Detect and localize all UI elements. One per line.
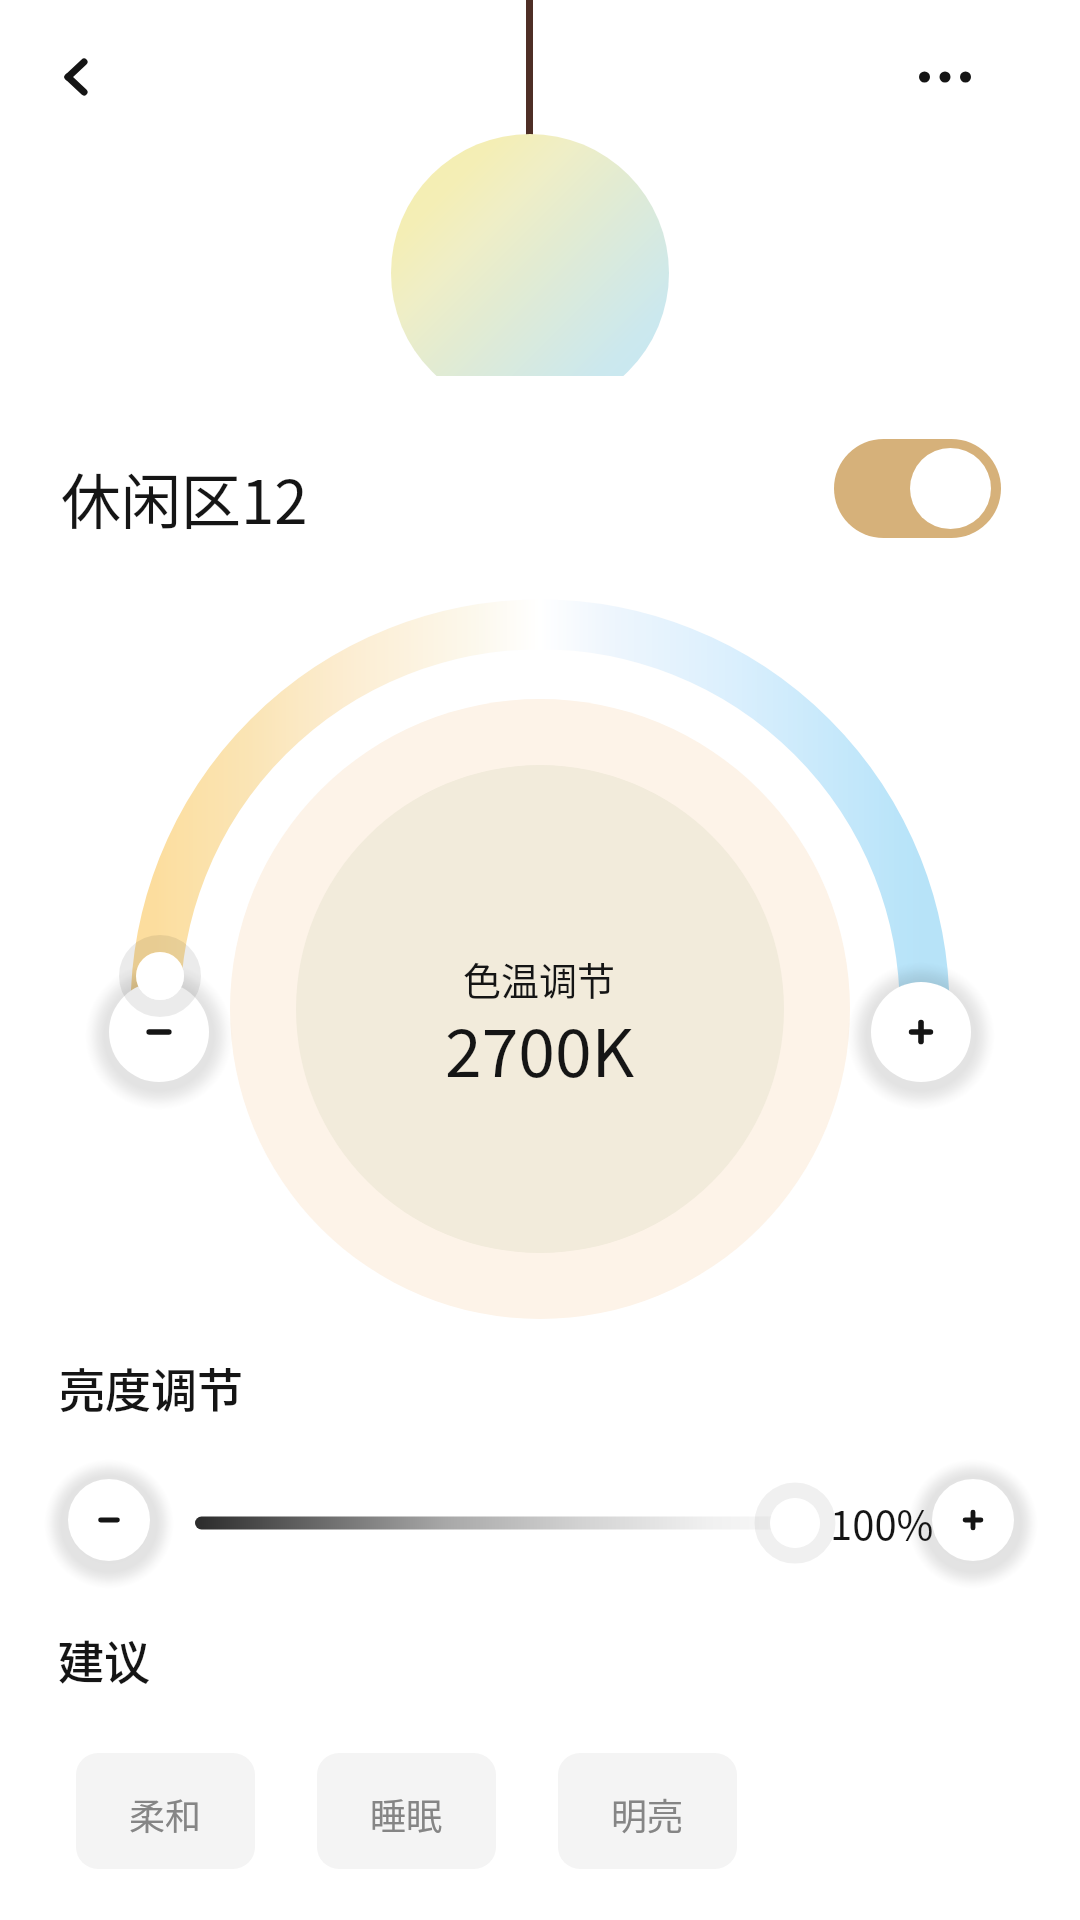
staticText: 睡眠: [370, 1788, 443, 1840]
button[interactable]: Decrease colour temperature: [83, 956, 235, 1108]
button[interactable]: 柔和: [76, 1753, 255, 1869]
button[interactable]: Decrease brightness: [42, 1453, 176, 1587]
staticText: 色温调节: [463, 951, 616, 1006]
staticText: 休闲区12: [61, 454, 308, 541]
button[interactable]: Power toggle: [834, 439, 1001, 538]
staticText: 明亮: [611, 1788, 684, 1840]
button[interactable]: Increase colour temperature: [845, 956, 997, 1108]
staticText: 亮度调节: [59, 1354, 243, 1421]
button[interactable]: More options: [898, 30, 992, 124]
button[interactable]: Increase brightness: [906, 1453, 1040, 1587]
button[interactable]: 睡眠: [317, 1753, 496, 1869]
button[interactable]: 明亮: [558, 1753, 737, 1869]
staticText: 柔和: [129, 1788, 202, 1840]
staticText: 100%: [830, 1494, 934, 1552]
button[interactable]: Back: [29, 30, 123, 124]
staticText: 建议: [58, 1626, 150, 1693]
staticText: 2700K: [445, 1000, 635, 1096]
